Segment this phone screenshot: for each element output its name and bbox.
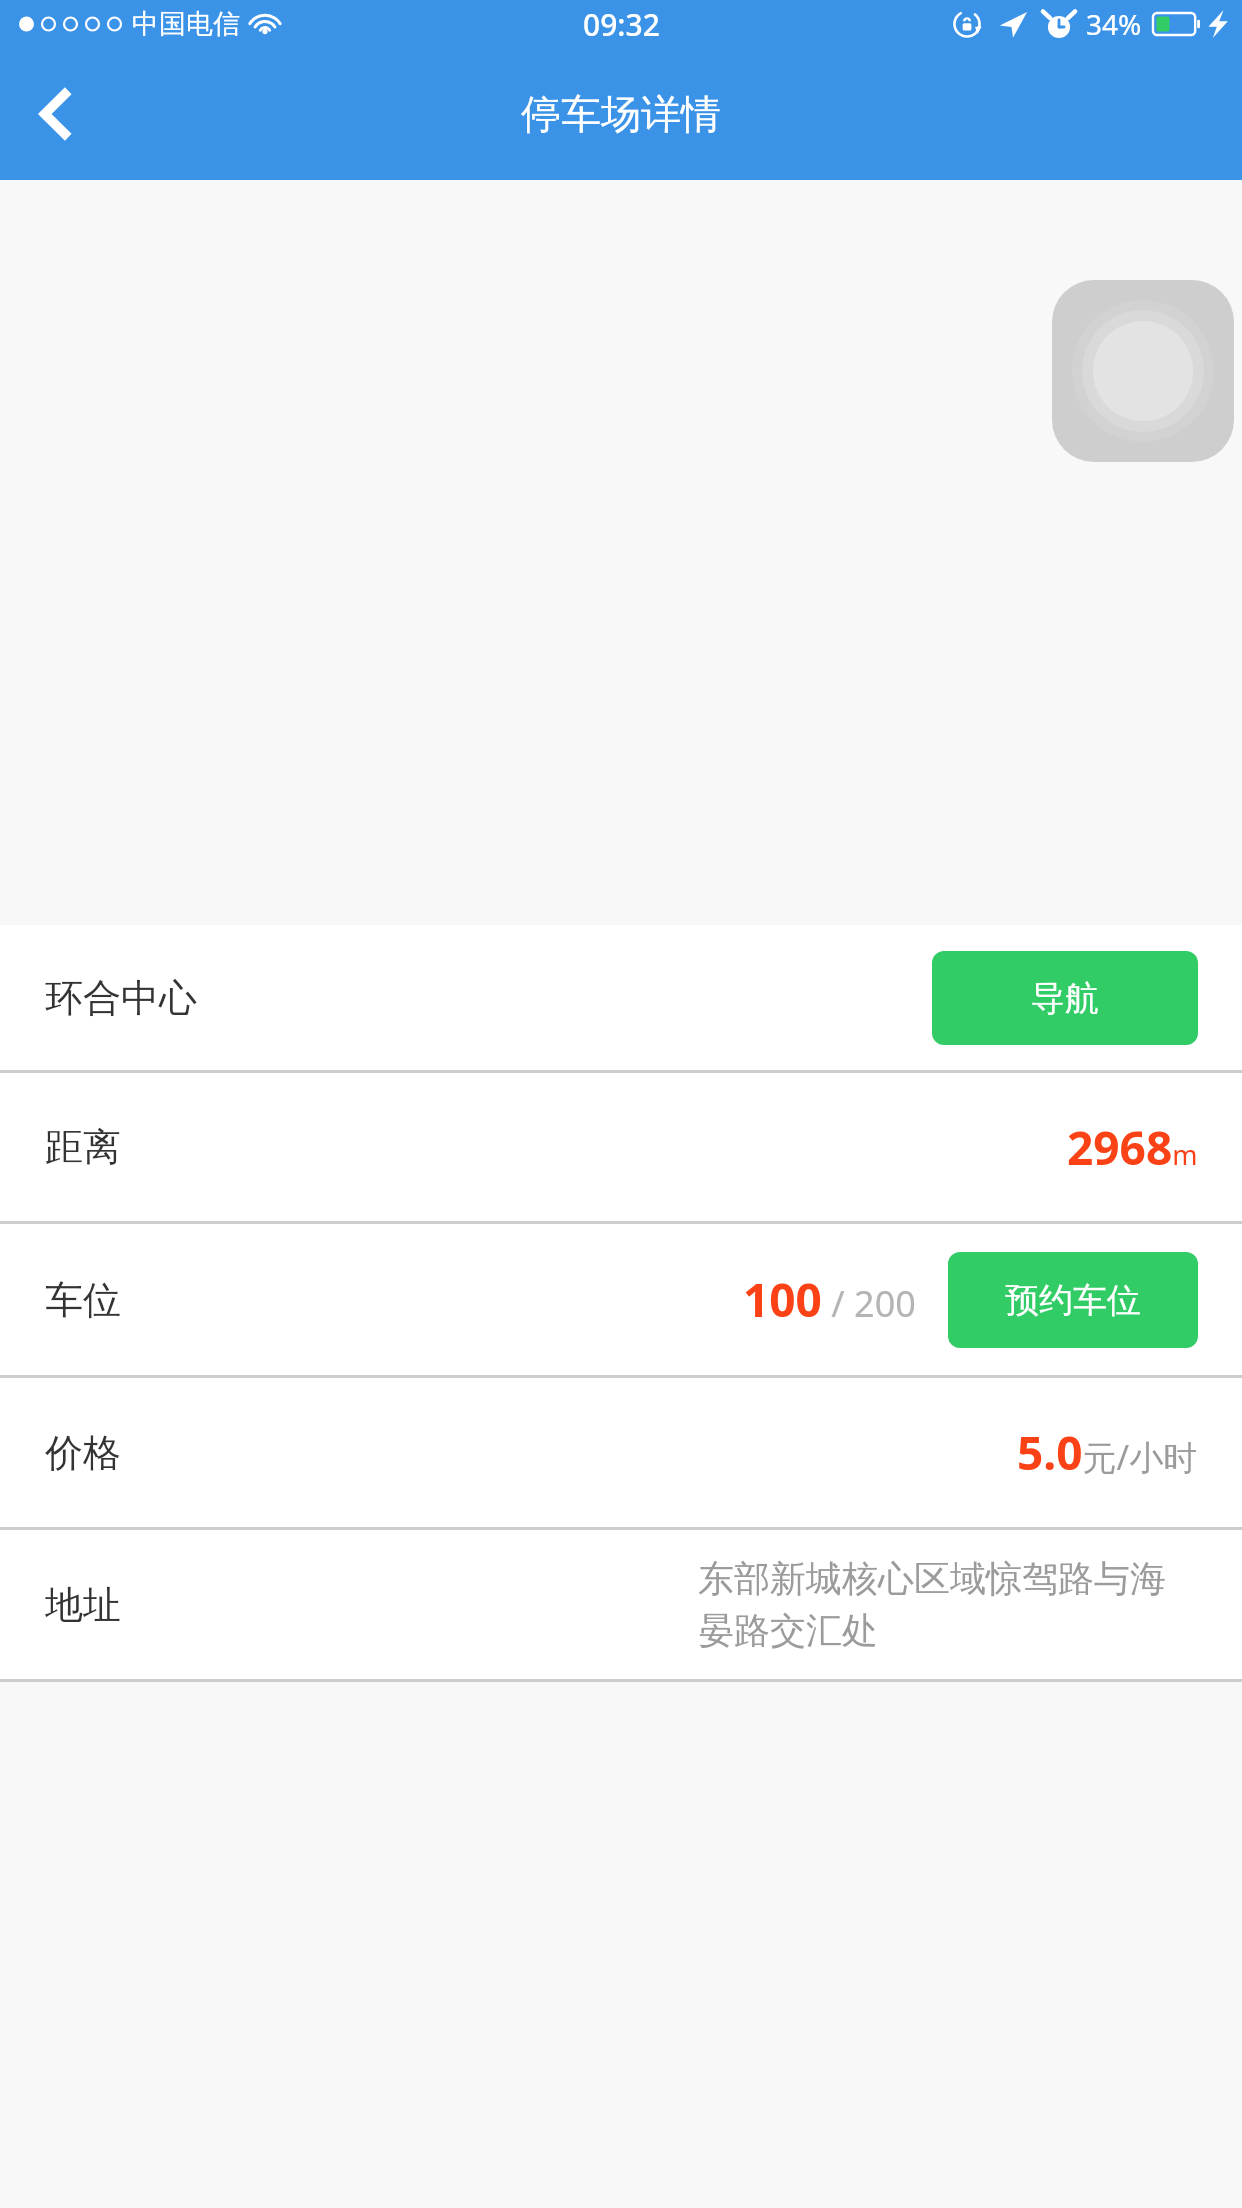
staticText: 环合中心 [45, 974, 197, 1022]
staticText: 中国电信 [132, 7, 240, 41]
staticText: 5.0元/小时 [1017, 1421, 1198, 1484]
button[interactable]: 导航 [932, 951, 1198, 1045]
button[interactable]: 车位 [0, 1224, 1242, 1375]
button[interactable]: Locate me [1052, 280, 1234, 462]
staticText: 地址 [45, 1581, 121, 1629]
staticText: 车位 [45, 1276, 121, 1324]
button[interactable]: 预约车位 [948, 1252, 1198, 1348]
staticText: 距离 [45, 1123, 121, 1171]
staticText: 34% [1086, 5, 1142, 43]
staticText: 2968m [1067, 1116, 1198, 1179]
button[interactable]: 环合中心 [0, 925, 1242, 1070]
button[interactable]: 价格 [0, 1378, 1242, 1527]
staticText: 价格 [45, 1429, 121, 1477]
staticText: 东部新城核心区域惊驾路与海晏路交汇处 [698, 1556, 1198, 1654]
button[interactable]: 地址 [0, 1530, 1242, 1679]
button[interactable]: Back [8, 66, 104, 162]
staticText: 100 / 200 [743, 1268, 916, 1331]
staticText: 09:32 [583, 4, 660, 45]
button[interactable]: 距离 [0, 1073, 1242, 1221]
staticText: 预约车位 [1005, 1279, 1141, 1322]
staticText: 导航 [1031, 977, 1099, 1020]
staticText: 停车场详情 [521, 89, 721, 139]
